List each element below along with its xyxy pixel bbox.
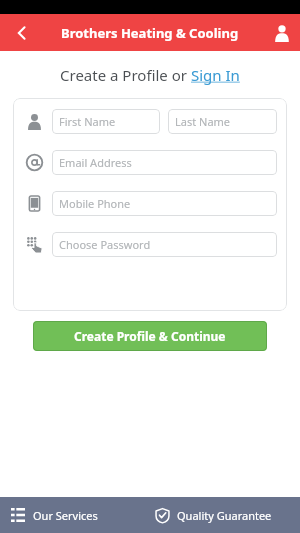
button[interactable]: Email Address [52,150,277,175]
button[interactable]: Choose Password [52,232,277,257]
button[interactable]: Mobile Phone [52,191,277,216]
staticText: Last Name [175,114,231,129]
staticText: Our Services [33,508,98,523]
staticText: Sign In [191,65,240,85]
staticText: Create a Profile or [60,65,191,85]
button[interactable]: Our Services [0,497,150,533]
staticText: Mobile Phone [59,196,131,211]
button[interactable]: Quality Guarantee [150,497,300,533]
staticText: Brothers Heating & Cooling [61,24,239,42]
staticText: Create Profile & Continue [74,328,226,344]
staticText: First Name [59,114,116,129]
button[interactable]: First Name [52,109,160,134]
button[interactable]: Back [0,14,44,51]
button[interactable]: Account [264,14,300,51]
staticText: Choose Password [59,237,151,252]
staticText: Quality Guarantee [177,508,272,523]
staticText: Email Address [59,155,132,170]
button[interactable]: Sign In [191,65,240,85]
button[interactable]: Create Profile & Continue [33,321,267,351]
button[interactable]: Last Name [168,109,277,134]
